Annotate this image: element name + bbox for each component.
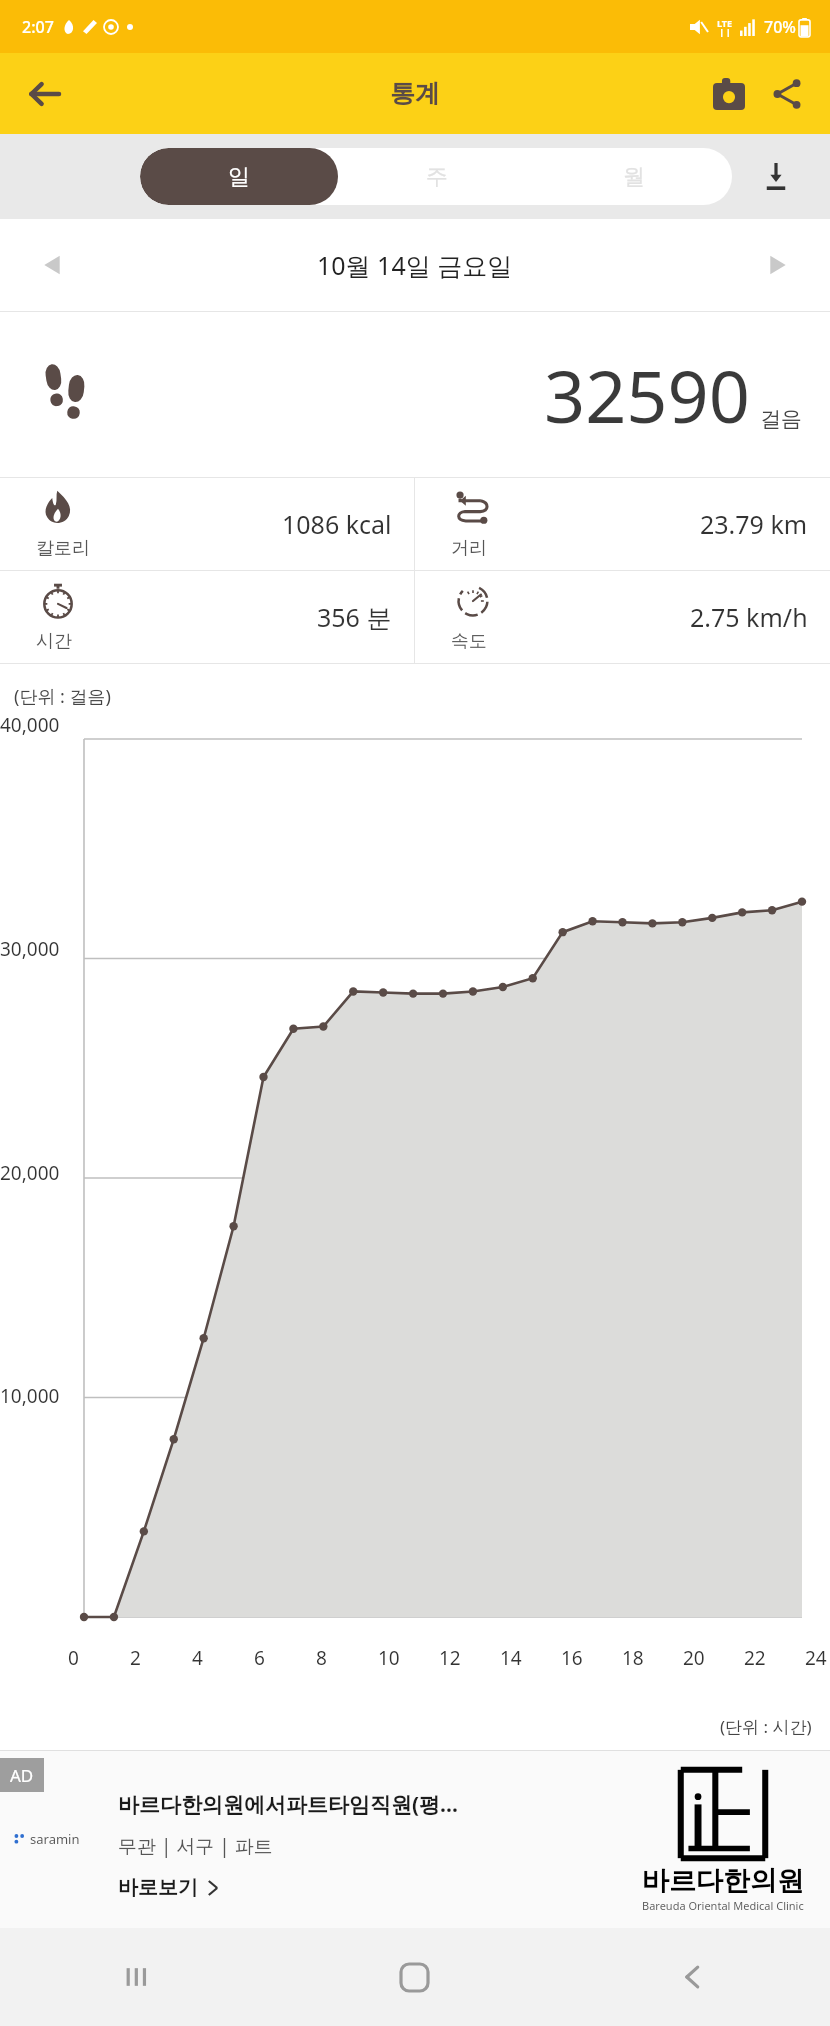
staticText: 32590 (544, 346, 750, 444)
button[interactable]: Recent apps (0, 1928, 276, 2026)
staticText: 8 (316, 1645, 327, 1671)
staticText: 2 (130, 1645, 141, 1671)
staticText: 일 (228, 163, 250, 191)
staticText: 356 분 (317, 600, 392, 634)
staticText: 70% (764, 16, 796, 38)
staticText: 2:07 (22, 16, 54, 38)
button[interactable]: 시간 (0, 571, 414, 663)
staticText: 16 (561, 1645, 583, 1671)
staticText: 40,000 (0, 712, 60, 738)
staticText: 30,000 (0, 936, 60, 962)
staticText: 시간 (36, 630, 72, 653)
staticText: 주 (426, 163, 448, 191)
button[interactable]: 칼로리 (0, 478, 414, 570)
staticText: LTE (717, 17, 733, 29)
button[interactable]: AD (0, 1750, 830, 1928)
staticText: 통계 (390, 78, 440, 109)
button[interactable]: Back (553, 1928, 830, 2026)
staticText: 속도 (451, 630, 487, 653)
staticText: saramin (30, 1830, 80, 1848)
staticText: 20 (683, 1645, 705, 1671)
button[interactable]: Share (758, 65, 816, 123)
staticText: 거리 (451, 537, 487, 560)
staticText: 6 (254, 1645, 265, 1671)
staticText: 바로보기 (118, 1875, 198, 1900)
staticText: 무관 | 서구 | 파트 (118, 1833, 273, 1859)
staticText: 걸음 (760, 406, 802, 432)
staticText: 12 (439, 1645, 461, 1671)
staticText: 바르다한의원에서파트타임직원(평... (118, 1790, 458, 1819)
staticText: 18 (622, 1645, 644, 1671)
staticText: 24 (805, 1645, 827, 1671)
button[interactable]: Previous day (28, 241, 76, 289)
staticText: 10월 14일 금요일 (317, 248, 513, 282)
staticText: (단위 : 걸음) (14, 684, 111, 709)
staticText: 칼로리 (36, 537, 90, 560)
staticText: 월 (623, 163, 645, 191)
staticText: 14 (500, 1645, 522, 1671)
staticText: 2.75 km/h (690, 600, 808, 634)
staticText: AD (10, 1764, 34, 1787)
button[interactable]: Back (16, 66, 72, 122)
button[interactable]: 월 (535, 148, 732, 205)
staticText: 10,000 (0, 1383, 60, 1409)
staticText: 22 (744, 1645, 766, 1671)
staticText: 4 (192, 1645, 203, 1671)
staticText: 1086 kcal (282, 507, 392, 541)
button[interactable]: Capture screenshot (700, 65, 758, 123)
staticText: 23.79 km (700, 507, 808, 541)
button[interactable]: 일 (140, 148, 338, 205)
staticText: 20,000 (0, 1160, 60, 1186)
staticText: 0 (68, 1645, 79, 1671)
button[interactable]: Home (276, 1928, 553, 2026)
staticText: 10 (378, 1645, 400, 1671)
button[interactable]: Next day (754, 241, 802, 289)
staticText: 바르다한의원 (642, 1864, 804, 1898)
button[interactable]: Download (750, 151, 802, 203)
button[interactable]: 거리 (415, 478, 830, 570)
staticText: (단위 : 시간) (720, 1715, 812, 1738)
button[interactable]: 속도 (415, 571, 830, 663)
staticText: Bareuda Oriental Medical Clinic (642, 1898, 804, 1913)
